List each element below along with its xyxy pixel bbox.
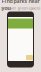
staticText: Find parks near you — [1, 0, 39, 12]
staticText: Discover green spaces — [0, 5, 40, 11]
